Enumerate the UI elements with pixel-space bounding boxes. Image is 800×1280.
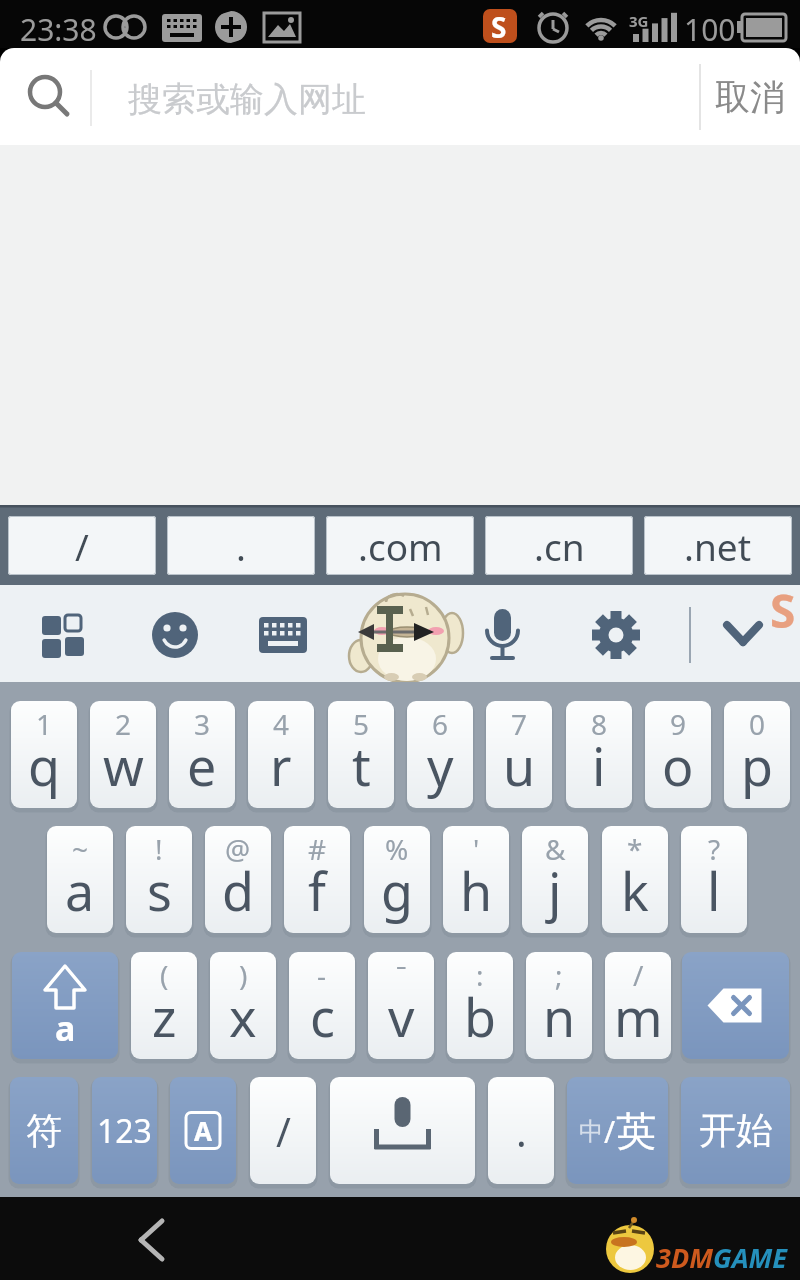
button[interactable]: &	[522, 826, 588, 933]
staticText: f	[308, 855, 326, 926]
staticText: )	[239, 956, 248, 994]
button[interactable]	[330, 1077, 475, 1184]
staticText: 英	[616, 1106, 656, 1156]
staticText: ˉ	[396, 956, 407, 994]
staticText: j	[548, 855, 562, 926]
button[interactable]: .	[488, 1077, 554, 1184]
button[interactable]: *	[602, 826, 668, 933]
button[interactable]: @	[205, 826, 271, 933]
staticText: 100	[684, 9, 736, 50]
staticText: 1	[36, 705, 53, 743]
button[interactable]: 3	[169, 701, 235, 808]
button[interactable]	[135, 593, 215, 675]
staticText: S	[770, 579, 796, 642]
staticText: b	[464, 981, 496, 1052]
staticText: 4	[273, 705, 290, 743]
button[interactable]: .com	[326, 516, 474, 575]
staticText: *	[627, 830, 643, 868]
staticText: 开始	[699, 1107, 773, 1154]
button[interactable]: )	[210, 952, 276, 1059]
staticText: 6	[432, 705, 449, 743]
button[interactable]: 123	[92, 1077, 157, 1184]
staticText: S	[491, 8, 507, 46]
staticText: q	[28, 730, 60, 801]
button[interactable]	[360, 593, 440, 675]
button[interactable]: :	[447, 952, 513, 1059]
button[interactable]: '	[443, 826, 509, 933]
staticText: 7	[511, 705, 528, 743]
button[interactable]: 7	[486, 701, 552, 808]
staticText: w	[103, 730, 144, 801]
staticText: 5	[353, 705, 370, 743]
staticText: 符	[26, 1108, 62, 1153]
staticText: '	[473, 830, 480, 868]
button[interactable]: 6	[407, 701, 473, 808]
button[interactable]	[243, 593, 323, 675]
staticText: 3G	[629, 11, 649, 31]
staticText: /	[633, 956, 644, 994]
button[interactable]: 9	[645, 701, 711, 808]
button[interactable]: %	[364, 826, 430, 933]
button[interactable]	[21, 593, 101, 675]
button[interactable]: 中	[567, 1077, 668, 1184]
button[interactable]: .	[167, 516, 315, 575]
staticText: %	[385, 830, 409, 868]
button[interactable]: ~	[47, 826, 113, 933]
button[interactable]: ?	[681, 826, 747, 933]
staticText: 取消	[715, 75, 785, 119]
button[interactable]: /	[8, 516, 156, 575]
staticText: 搜索或输入网址	[128, 78, 366, 121]
button[interactable]: a	[12, 952, 118, 1059]
staticText: 8	[591, 705, 608, 743]
button[interactable]: .net	[644, 516, 792, 575]
staticText: ?	[708, 830, 721, 868]
staticText: p	[741, 730, 773, 801]
staticText: m	[614, 981, 663, 1052]
button[interactable]: A	[170, 1077, 236, 1184]
button[interactable]	[703, 593, 783, 675]
staticText: u	[503, 730, 536, 801]
button[interactable]: 0	[724, 701, 790, 808]
button[interactable]: !	[126, 826, 192, 933]
button[interactable]: 取消	[700, 48, 800, 145]
staticText: h	[460, 855, 493, 926]
staticText: d	[222, 855, 254, 926]
button[interactable]: ;	[526, 952, 592, 1059]
staticText: 2	[115, 705, 132, 743]
button[interactable]: .cn	[485, 516, 633, 575]
button[interactable]: 5	[328, 701, 394, 808]
button[interactable]: 1	[11, 701, 77, 808]
button[interactable]: #	[284, 826, 350, 933]
button[interactable]: -	[289, 952, 355, 1059]
button[interactable]: 搜索或输入网址	[0, 48, 800, 145]
staticText: .com	[358, 521, 443, 571]
button[interactable]	[100, 1197, 210, 1280]
button[interactable]: ˉ	[368, 952, 434, 1059]
button[interactable]	[682, 952, 789, 1059]
staticText: a	[65, 855, 95, 926]
button[interactable]: (	[131, 952, 197, 1059]
staticText: /	[75, 521, 89, 571]
staticText: x	[229, 981, 257, 1052]
staticText: ;	[555, 956, 563, 994]
button[interactable]: 开始	[681, 1077, 790, 1184]
button[interactable]: 8	[566, 701, 632, 808]
button[interactable]	[576, 593, 656, 675]
button[interactable]	[462, 593, 542, 675]
staticText: 3	[194, 705, 211, 743]
button[interactable]: /	[250, 1077, 316, 1184]
staticText: c	[310, 981, 335, 1052]
staticText: l	[707, 855, 721, 926]
staticText: @	[225, 830, 251, 868]
button[interactable]: 符	[10, 1077, 78, 1184]
staticText: A	[194, 1113, 212, 1148]
staticText: r	[270, 730, 292, 801]
staticText: 中	[579, 1116, 604, 1147]
button[interactable]: /	[605, 952, 671, 1059]
staticText: z	[152, 981, 177, 1052]
staticText: -	[317, 956, 327, 994]
staticText: g	[381, 855, 413, 926]
button[interactable]: 2	[90, 701, 156, 808]
button[interactable]: 4	[248, 701, 314, 808]
staticText: .	[236, 521, 246, 571]
